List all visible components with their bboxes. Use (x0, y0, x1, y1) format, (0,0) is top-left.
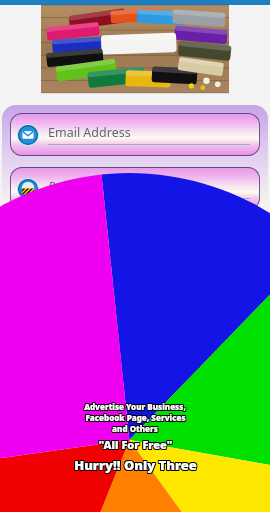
staticText: SIGNUP (112, 265, 159, 281)
staticText: Slots Available (86, 473, 185, 475)
staticText: Slots Available (85, 475, 184, 477)
other: Email (17, 124, 39, 146)
staticText: Slots Available (87, 473, 186, 475)
staticText: "All For Free" (98, 436, 173, 451)
staticText: and Others (112, 423, 158, 434)
staticText: "All For Free" (97, 436, 172, 451)
staticText: Facebook Page, Services (86, 413, 187, 424)
staticText: "All For Free" (97, 437, 172, 452)
staticText: Hurry!! Only Three (74, 457, 197, 475)
staticText: Slots Available (85, 474, 184, 476)
staticText: Advertise Your Business, (85, 401, 187, 412)
staticText: Facebook Page, Services (86, 411, 187, 422)
staticText: and Others (112, 424, 158, 435)
staticText: Facebook Page, Services (84, 411, 185, 422)
staticText: "All For Free" (99, 438, 174, 453)
staticText: Advertise Your Business, (83, 400, 185, 411)
staticText: "All For Free" (99, 436, 174, 451)
staticText: Hurry!! Only Three (75, 455, 198, 473)
staticText: Advertise Your Business, (84, 402, 186, 413)
staticText: Slots Available (86, 475, 185, 477)
staticText: Hurry!! Only Three (75, 457, 198, 475)
staticText: Password (48, 178, 102, 195)
staticText: Hurry!! Only Three (73, 456, 196, 474)
staticText: Email Address (48, 124, 131, 141)
staticText: Advertise Your Business, (83, 401, 185, 412)
button[interactable]: Advertise Your Business, (42, 398, 228, 479)
staticText: Advertise Your Business, (85, 402, 187, 413)
button[interactable]: SIGNUP (103, 258, 167, 288)
button[interactable]: FORGOT PASSWORD (135, 338, 259, 368)
staticText: "All For Free" (98, 437, 173, 452)
staticText: Hurry!! Only Three (73, 455, 196, 473)
staticText: and Others (113, 424, 159, 435)
staticText: Slots Available (87, 475, 186, 477)
other: Password (17, 178, 39, 200)
staticText: Slots Available (87, 474, 186, 476)
staticText: Advertise Your Business, (85, 400, 187, 411)
staticText: FORGOT PASSWORD (145, 346, 249, 360)
staticText: Advertise Your Business, (84, 400, 186, 411)
staticText: and Others (111, 423, 157, 434)
staticText: Slots Available (85, 473, 184, 475)
staticText: and Others (113, 423, 159, 434)
staticText: Facebook Page, Services (84, 413, 185, 424)
staticText: "All For Free" (98, 438, 173, 453)
staticText: and Others (111, 424, 157, 435)
staticText: Hurry!! Only Three (73, 457, 196, 475)
staticText: and Others (112, 422, 158, 433)
staticText: Hurry!! Only Three (74, 456, 197, 474)
staticText: Facebook Page, Services (85, 413, 186, 424)
staticText: Hurry!! Only Three (74, 455, 197, 473)
staticText: Hurry!! Only Three (75, 456, 198, 474)
staticText: and Others (111, 422, 157, 433)
staticText: Facebook Page, Services (86, 412, 187, 423)
staticText: Facebook Page, Services (85, 411, 186, 422)
button[interactable]: Password (10, 167, 260, 210)
staticText: and Others (113, 422, 159, 433)
staticText: Advertise Your Business, (84, 401, 186, 412)
button[interactable]: Email (10, 113, 260, 156)
staticText: Facebook Page, Services (85, 412, 186, 423)
staticText: "All For Free" (97, 438, 172, 453)
staticText: Advertise Your Business, (83, 402, 185, 413)
staticText: Slots Available (86, 474, 185, 476)
staticText: "All For Free" (99, 437, 174, 452)
staticText: Facebook Page, Services (84, 412, 185, 423)
